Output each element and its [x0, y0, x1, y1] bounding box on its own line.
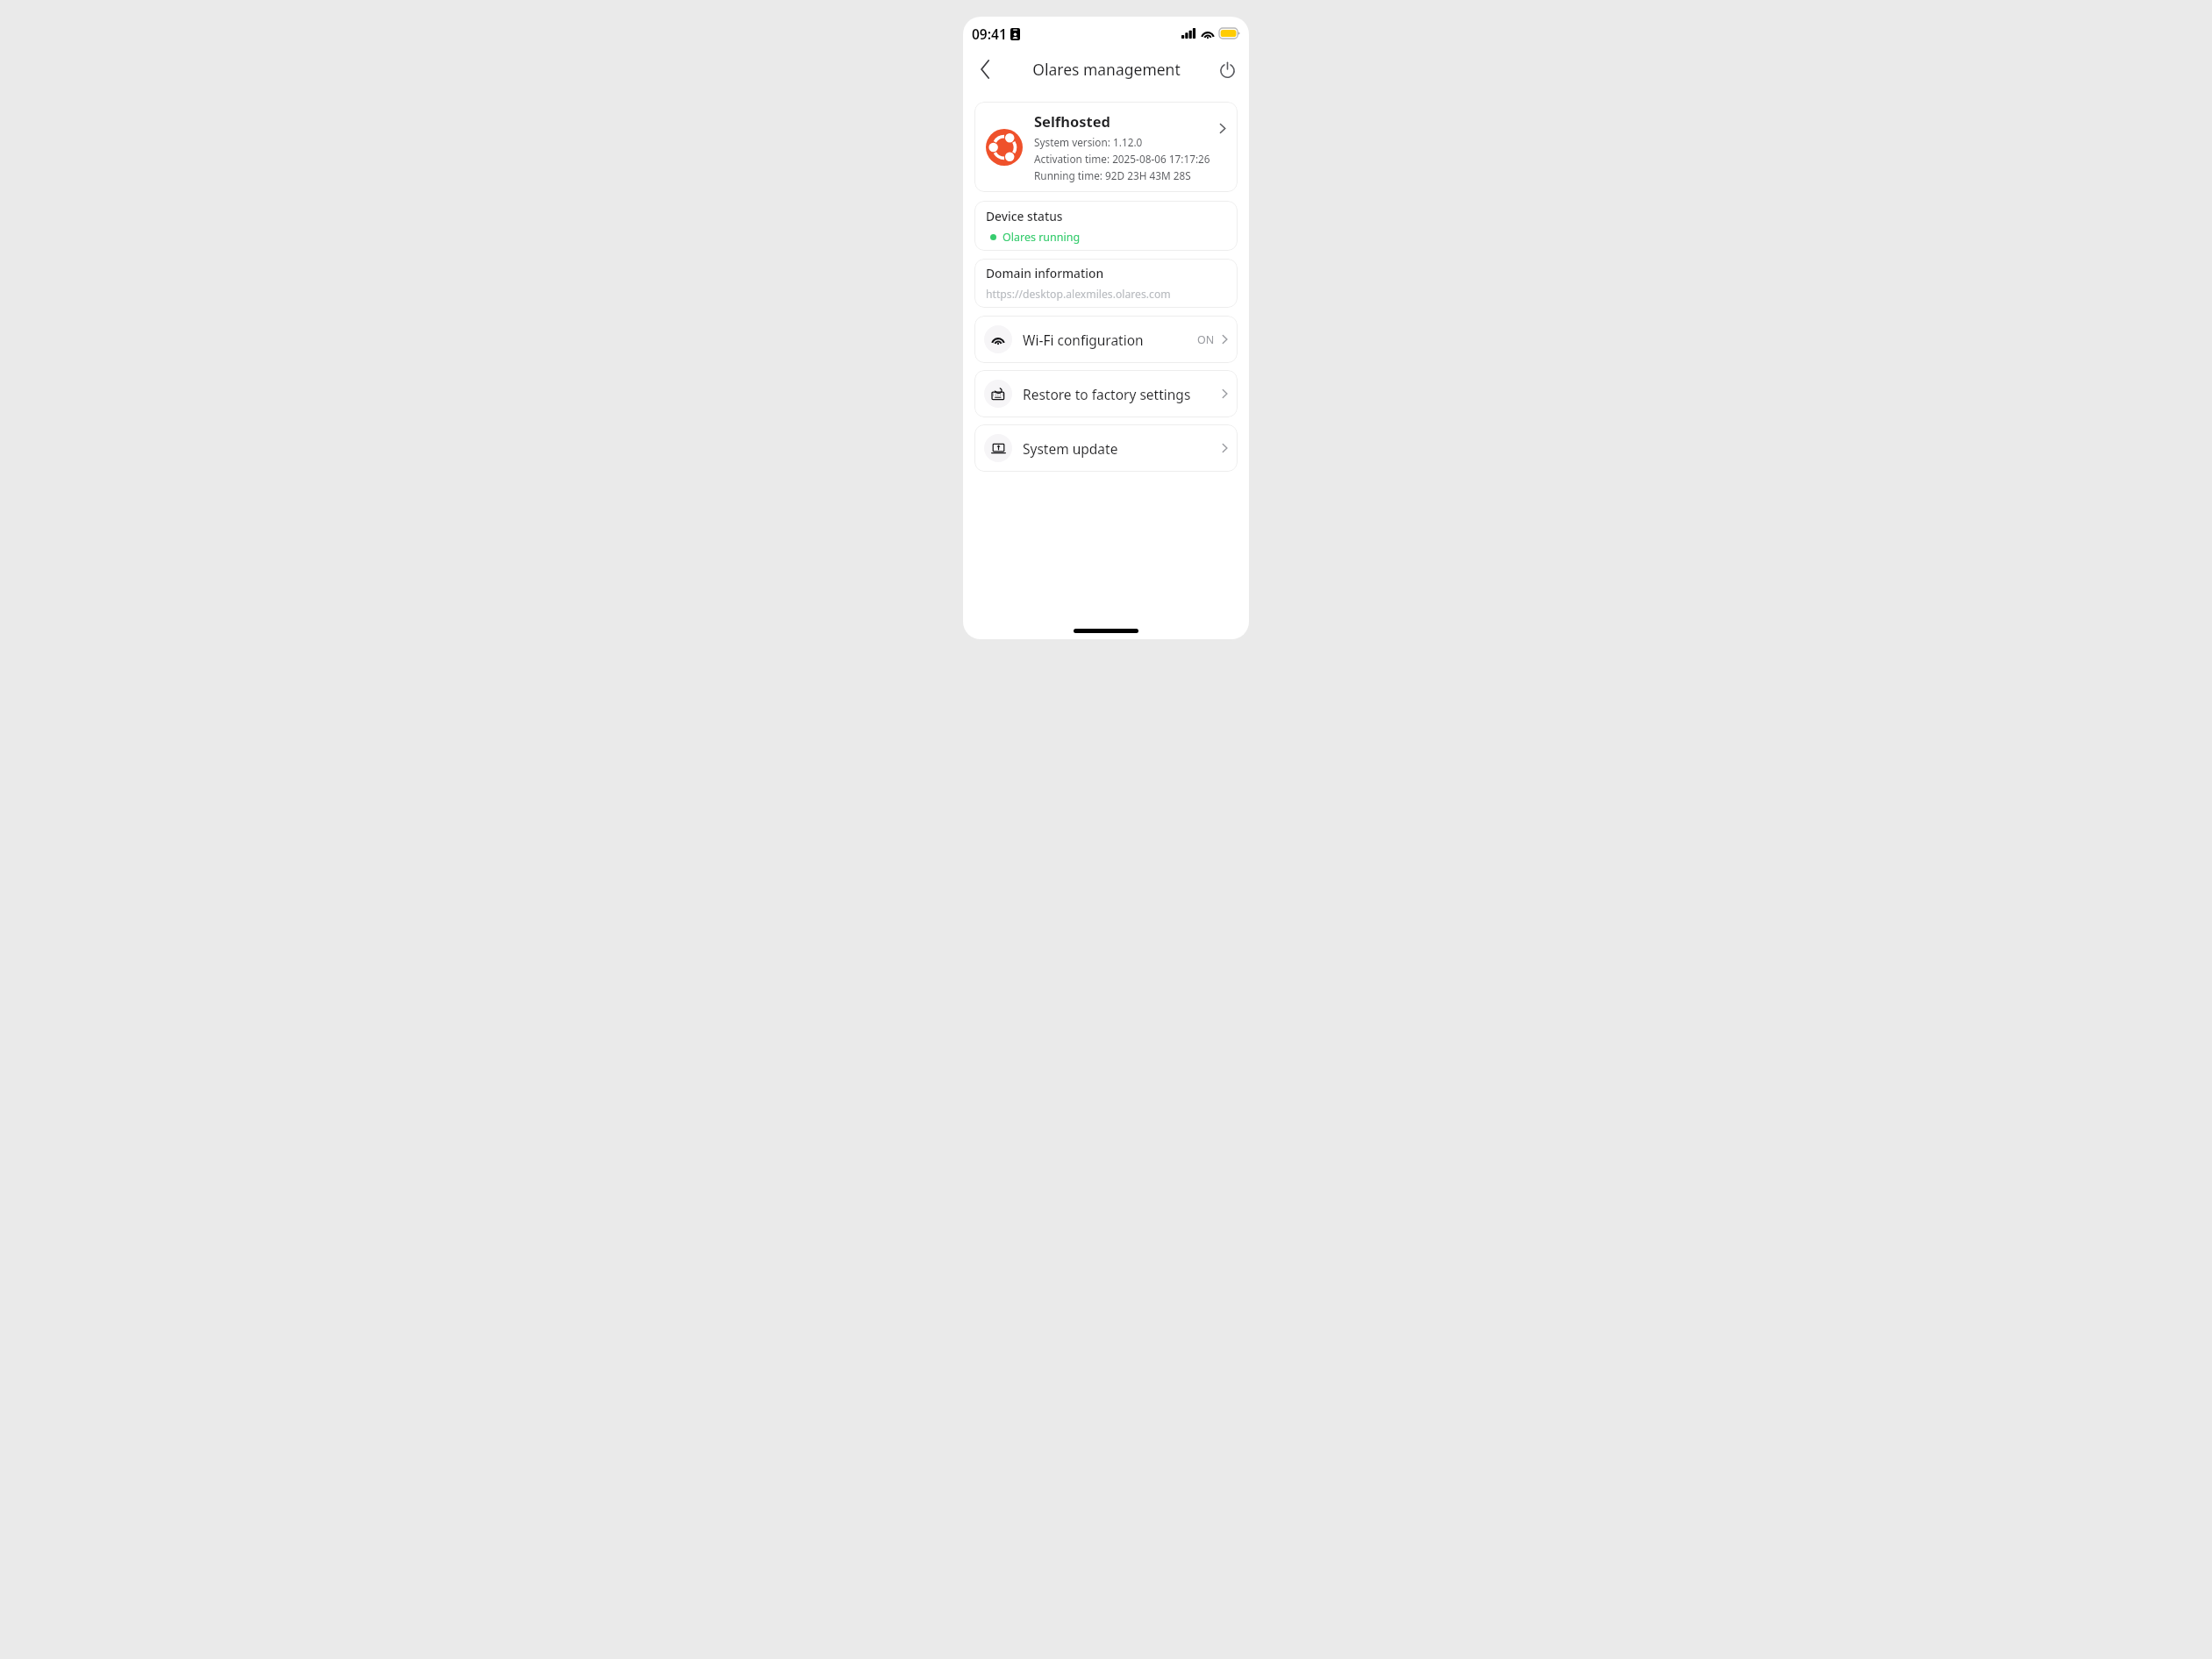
staticText: Running time: 92D 23H 43M 28S [1034, 168, 1191, 182]
staticText: System version: 1.12.0 [1034, 135, 1143, 149]
staticText: Restore to factory settings [1023, 385, 1222, 403]
button[interactable]: Back [968, 53, 1002, 86]
staticText: ON [1197, 332, 1215, 347]
button[interactable]: System update [974, 424, 1238, 472]
button[interactable]: Wi-Fi configuration [974, 316, 1238, 363]
button[interactable]: Device status [974, 201, 1238, 251]
button[interactable]: Selfhosted [974, 102, 1238, 192]
staticText: 09:41 [972, 25, 1007, 43]
button[interactable]: Domain information [974, 259, 1238, 308]
staticText: System update [1023, 439, 1222, 458]
button[interactable]: Restore to factory settings [974, 370, 1238, 417]
staticText: Activation time: 2025-08-06 17:17:26 [1034, 152, 1210, 166]
staticText: Olares management [1032, 59, 1181, 80]
staticText: Selfhosted [1034, 111, 1111, 131]
staticText: Domain information [986, 265, 1104, 281]
staticText: Olares running [1003, 230, 1081, 245]
staticText: Device status [986, 208, 1063, 224]
staticText: Wi-Fi configuration [1023, 331, 1197, 349]
staticText: https://desktop.alexmiles.olares.com [986, 287, 1171, 302]
button[interactable]: Power [1210, 53, 1244, 86]
